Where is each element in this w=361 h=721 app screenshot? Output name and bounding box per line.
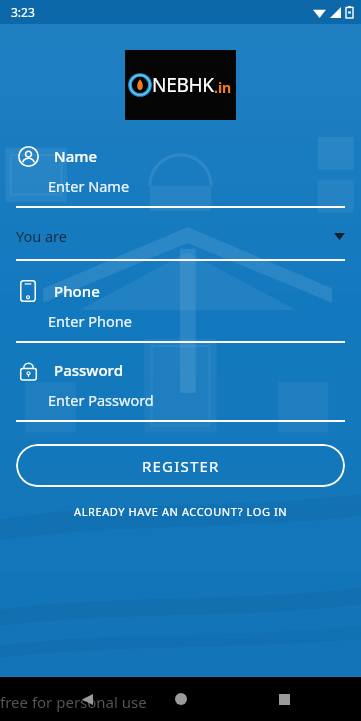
staticText: 3:23	[11, 4, 35, 20]
button[interactable]: Back	[72, 684, 102, 714]
staticText: NEBHK	[152, 72, 214, 98]
staticText: Password	[54, 360, 123, 380]
button[interactable]: You are	[0, 226, 361, 261]
staticText: Phone	[54, 281, 100, 301]
other: Name	[18, 146, 39, 167]
staticText: .in	[214, 78, 232, 97]
staticText: free for personal use	[0, 692, 147, 712]
button[interactable]: Phone	[0, 279, 361, 343]
button[interactable]: Password	[0, 358, 361, 422]
other: Phone	[18, 280, 38, 302]
button[interactable]: REGISTER	[16, 444, 345, 487]
button[interactable]: ALREADY HAVE AN ACCOUNT? LOG IN	[0, 504, 361, 519]
staticText: REGISTER	[142, 456, 220, 476]
staticText: Name	[54, 146, 98, 166]
button[interactable]: ONEBHK.in logo	[125, 50, 236, 120]
staticText: Enter Password	[48, 390, 154, 410]
staticText: Enter Name	[48, 176, 130, 196]
staticText: You are	[16, 226, 67, 246]
other: Open dropdown	[334, 233, 345, 240]
staticText: Enter Phone	[48, 311, 132, 331]
button[interactable]: Name	[0, 144, 361, 208]
other: Password	[19, 359, 38, 381]
staticText: ALREADY HAVE AN ACCOUNT? LOG IN	[74, 504, 288, 519]
button[interactable]: Home	[166, 684, 196, 714]
button[interactable]: Recent apps	[269, 684, 299, 714]
